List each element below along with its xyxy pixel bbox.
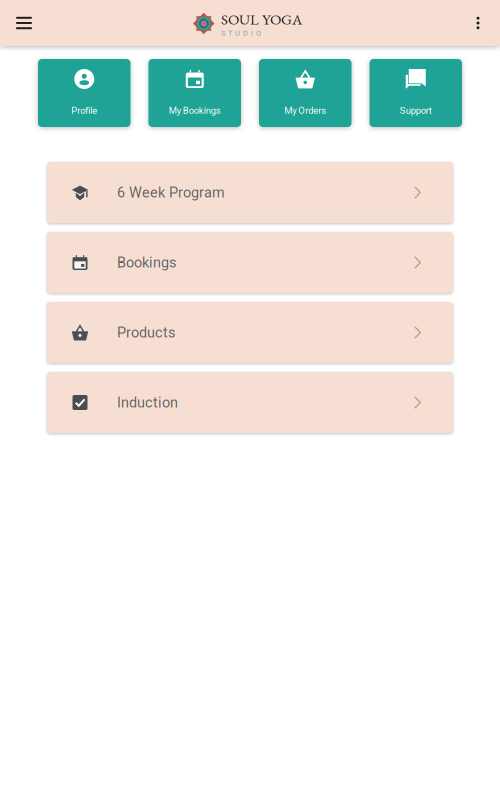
button[interactable]: Products xyxy=(47,302,453,363)
staticText: STUDIO xyxy=(221,29,261,38)
staticText: 6 Week Program xyxy=(117,184,225,201)
button[interactable]: Support xyxy=(369,59,462,127)
staticText: Bookings xyxy=(117,254,176,271)
staticText: Support xyxy=(400,105,432,116)
staticText: My Bookings xyxy=(169,105,221,116)
button[interactable]: Induction xyxy=(47,372,453,433)
button[interactable]: Bookings xyxy=(47,232,453,293)
button[interactable]: More options xyxy=(458,0,498,46)
staticText: SOUL YOGA xyxy=(221,9,302,29)
staticText: Induction xyxy=(117,394,178,411)
button[interactable]: Menu xyxy=(4,0,44,46)
staticText: Products xyxy=(117,324,175,341)
button[interactable]: My Orders xyxy=(259,59,351,127)
button[interactable]: 6 Week Program xyxy=(47,162,453,223)
button[interactable]: Profile xyxy=(38,59,130,127)
staticText: My Orders xyxy=(284,105,326,116)
staticText: Profile xyxy=(71,105,97,116)
button[interactable]: My Bookings xyxy=(148,59,241,127)
